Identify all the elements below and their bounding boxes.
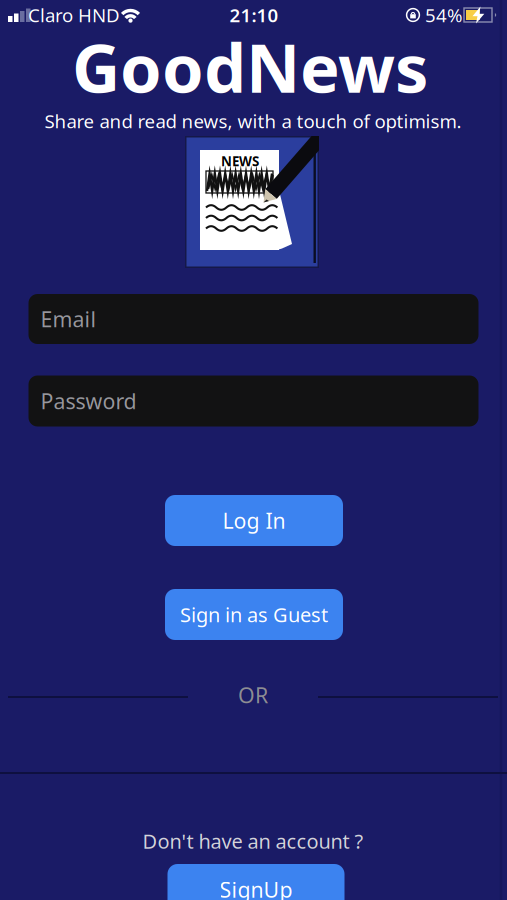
staticText: Claro HND — [28, 3, 120, 27]
button[interactable]: Sign in as Guest — [165, 589, 343, 640]
staticText: OR — [238, 681, 268, 709]
staticText: Don't have an account ? — [142, 828, 363, 854]
staticText: 21:10 — [229, 3, 278, 27]
button[interactable]: Log In — [165, 495, 343, 546]
staticText: SignUp — [219, 875, 292, 900]
staticText: 54% — [425, 3, 463, 27]
button[interactable]: Password — [28, 375, 478, 426]
button[interactable]: Email — [28, 294, 478, 344]
staticText: NEWS — [221, 152, 259, 170]
staticText: Log In — [222, 506, 285, 535]
staticText: GoodNews — [72, 23, 428, 111]
staticText: Share and read news, with a touch of opt… — [44, 109, 461, 133]
button[interactable]: SignUp — [167, 864, 344, 900]
staticText: Email — [40, 305, 96, 333]
staticText: Password — [40, 387, 136, 415]
staticText: Sign in as Guest — [180, 601, 328, 628]
